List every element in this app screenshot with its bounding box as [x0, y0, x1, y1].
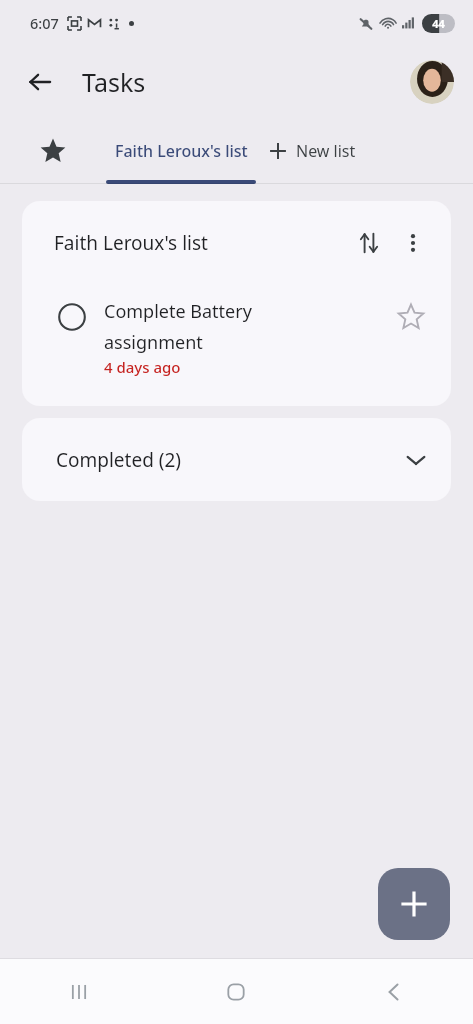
button[interactable]: Add task [378, 868, 450, 940]
button[interactable]: More options [391, 221, 435, 265]
button[interactable]: Mark complete [54, 299, 90, 335]
button[interactable]: Starred [0, 118, 105, 184]
button[interactable]: Mark complete [22, 285, 451, 406]
staticText: Complete Battery assignment [104, 299, 252, 354]
button[interactable]: Recents [0, 959, 157, 1024]
button[interactable]: Account [410, 60, 454, 104]
staticText: New list [296, 140, 356, 162]
staticText: Tasks [82, 65, 146, 99]
staticText: Faith Leroux's list [54, 230, 347, 256]
button[interactable]: Star task [389, 295, 433, 339]
staticText: Faith Leroux's list [115, 140, 248, 162]
staticText: 6:07 [30, 13, 59, 33]
button[interactable]: Faith Leroux's list [105, 118, 257, 184]
staticText: 4 days ago [104, 357, 181, 377]
staticText: 44 [432, 16, 445, 31]
button[interactable]: Back [315, 959, 473, 1024]
button[interactable]: Completed (2) [22, 418, 451, 501]
button[interactable]: Home [157, 959, 315, 1024]
button[interactable]: New list [269, 118, 356, 184]
button[interactable]: Back [16, 58, 64, 106]
staticText: Completed (2) [56, 447, 405, 473]
button[interactable]: Sort [347, 221, 391, 265]
